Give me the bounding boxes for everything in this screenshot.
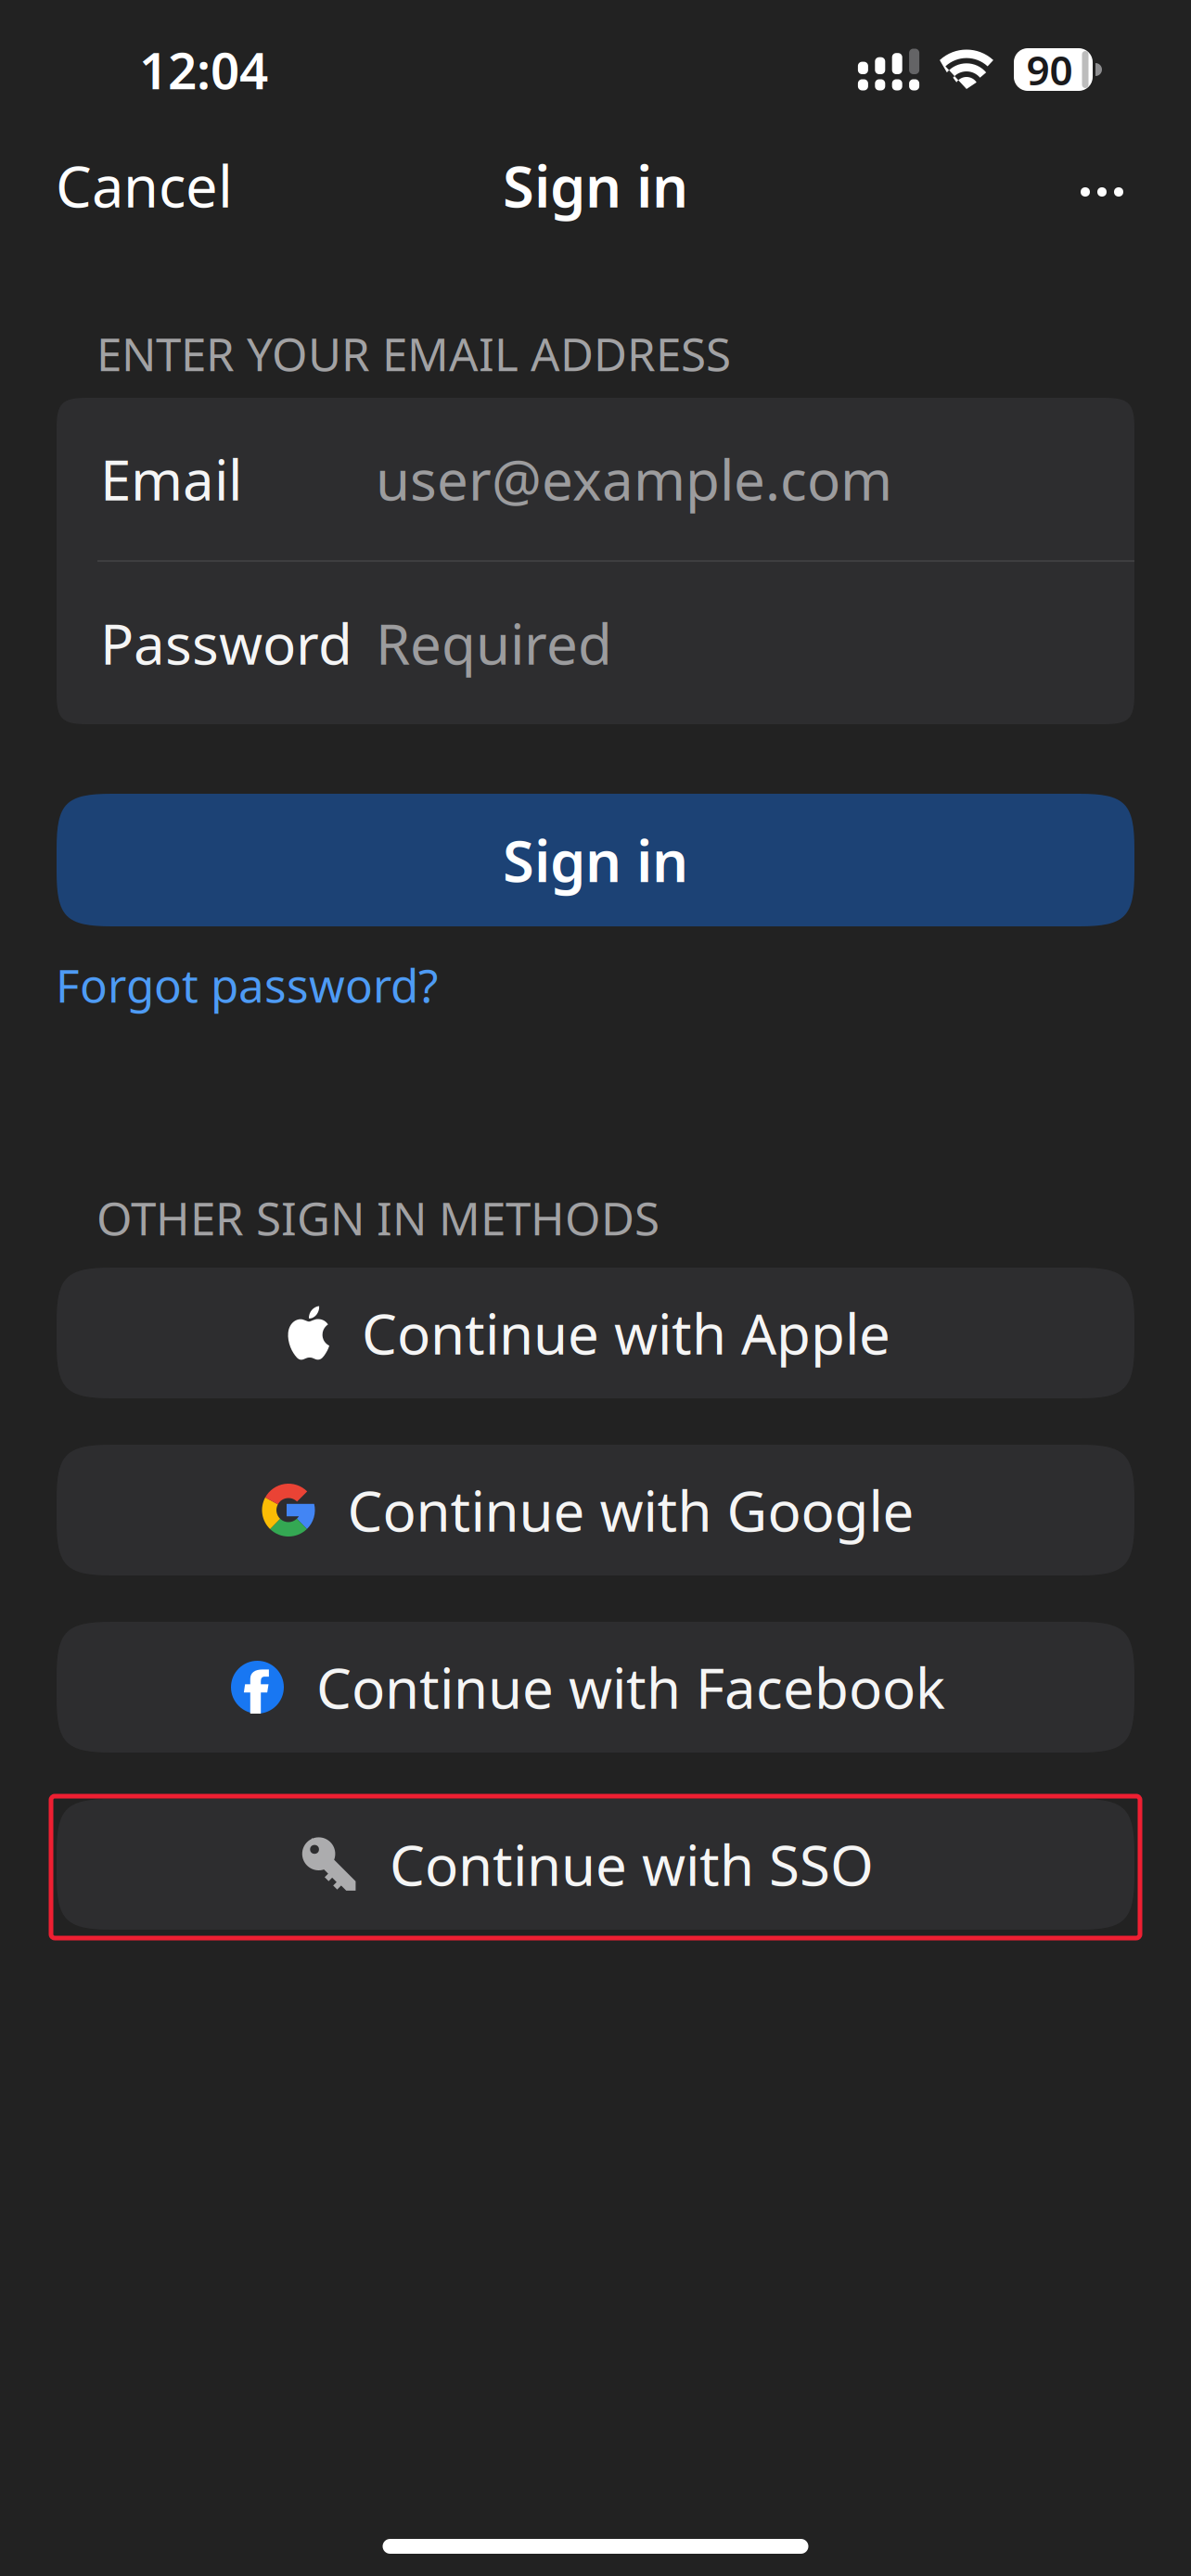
- staticText: Forgot password?: [56, 954, 438, 1015]
- staticText: Email: [100, 442, 242, 516]
- staticText: user@example.com: [376, 442, 892, 516]
- staticText: Sign in: [503, 148, 688, 223]
- staticText: Continue with Facebook: [316, 1650, 945, 1724]
- button[interactable]: Sign in: [57, 794, 1134, 926]
- staticText: Continue with SSO: [390, 1827, 874, 1901]
- button[interactable]: Cancel: [0, 124, 266, 247]
- button[interactable]: Continue with SSO: [57, 1799, 1134, 1930]
- staticText: Password: [100, 606, 352, 680]
- staticText: Continue with Google: [347, 1473, 914, 1547]
- button[interactable]: Forgot password?: [56, 958, 449, 1012]
- staticText: Continue with Apple: [362, 1296, 890, 1370]
- staticText: 90: [1026, 42, 1073, 97]
- button[interactable]: Continue with Google: [57, 1445, 1134, 1575]
- button[interactable]: Continue with Facebook: [57, 1622, 1134, 1753]
- staticText: ENTER YOUR EMAIL ADDRESS: [96, 323, 731, 384]
- staticText: 12:04: [139, 36, 268, 103]
- staticText: Required: [376, 606, 612, 680]
- button[interactable]: Password: [57, 562, 1134, 724]
- staticText: OTHER SIGN IN METHODS: [96, 1187, 660, 1248]
- button[interactable]: More options: [1040, 124, 1191, 247]
- staticText: Cancel: [56, 148, 233, 223]
- button[interactable]: Email: [57, 398, 1134, 560]
- button[interactable]: Continue with Apple: [57, 1268, 1134, 1398]
- staticText: Sign in: [503, 822, 688, 898]
